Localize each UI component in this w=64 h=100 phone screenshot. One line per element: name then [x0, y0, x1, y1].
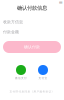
button[interactable]: 支付宝	[36, 65, 50, 80]
staticText: 收款方信息	[3, 19, 23, 24]
staticText: 确认付款信息	[17, 5, 47, 11]
staticText: ▮▮▮	[59, 1, 62, 4]
button[interactable]: 微信支付	[14, 65, 28, 80]
staticText: 支付即代表同意《用户服务协议》	[9, 90, 54, 93]
staticText: 支付宝	[38, 76, 47, 80]
staticText: 付款金额	[3, 29, 19, 34]
staticText: 微信支付	[15, 76, 27, 80]
staticText: 确认付款	[24, 44, 40, 49]
button[interactable]: 确认付款	[3, 41, 61, 53]
